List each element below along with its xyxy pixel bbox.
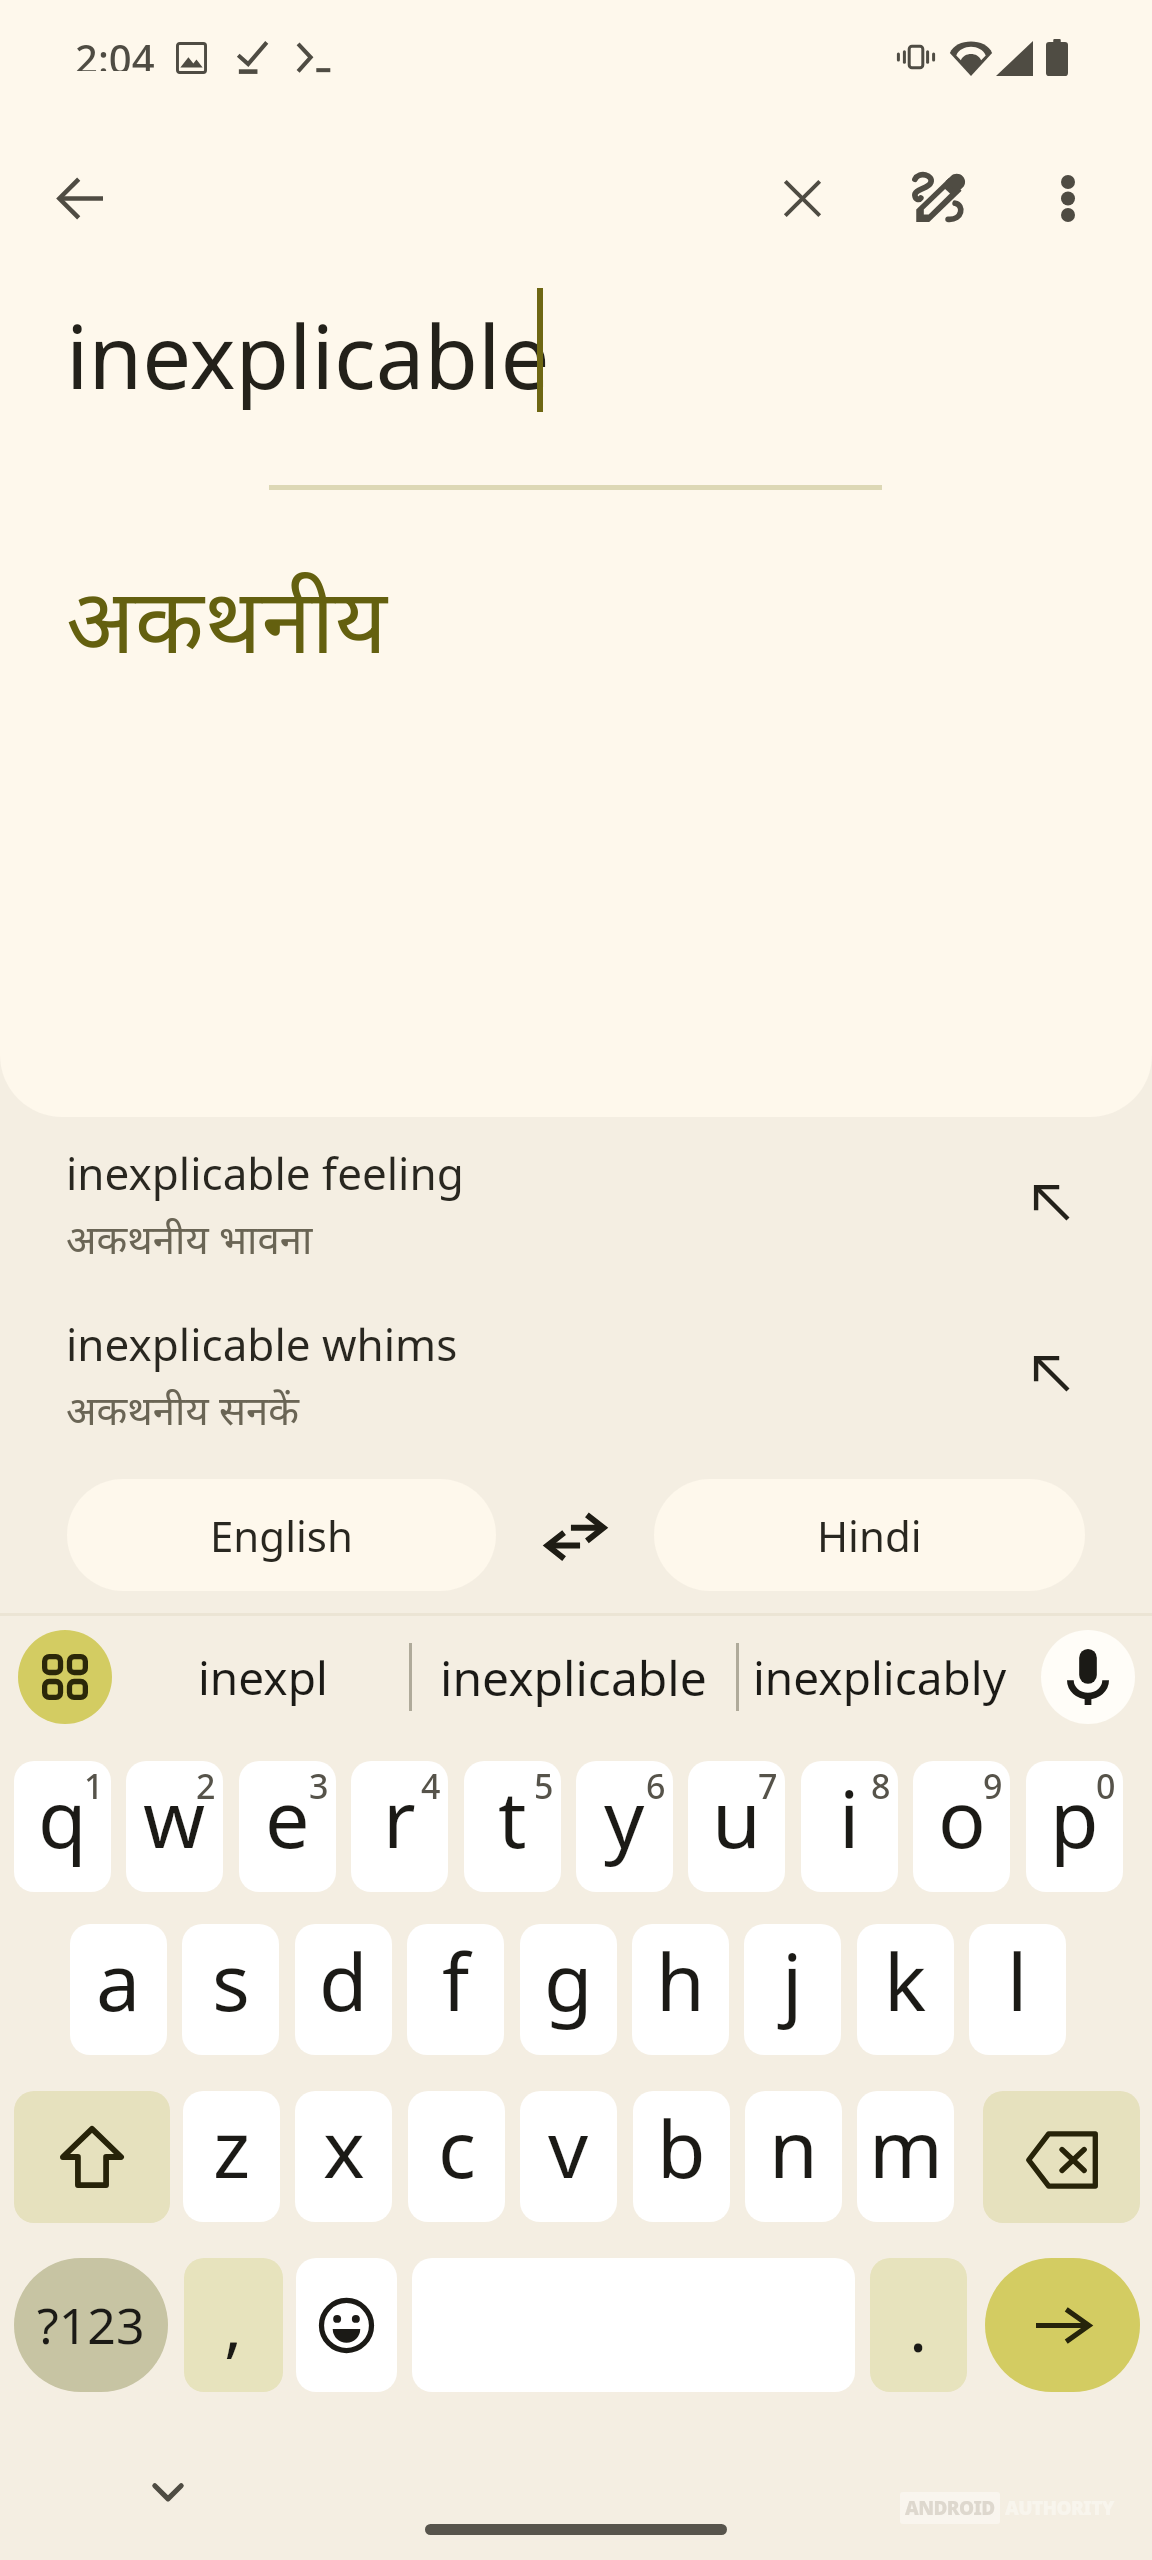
button[interactable]: Keyboard toolbar bbox=[18, 1630, 112, 1724]
staticText: , bbox=[224, 2277, 243, 2370]
staticText: a bbox=[96, 1927, 141, 2035]
button[interactable]: a bbox=[70, 1924, 167, 2055]
staticText: 0 bbox=[1096, 1763, 1116, 1809]
staticText: inexpl bbox=[198, 1646, 328, 1709]
staticText: e bbox=[265, 1764, 310, 1872]
button[interactable]: k bbox=[857, 1924, 954, 2055]
staticText: अकथनीय भावना bbox=[66, 1211, 313, 1265]
staticText: inexplicable bbox=[440, 1645, 707, 1710]
button[interactable]: English bbox=[67, 1479, 496, 1591]
button[interactable]: c bbox=[408, 2091, 505, 2222]
button[interactable]: Backspace bbox=[983, 2091, 1140, 2223]
staticText: 8 bbox=[871, 1763, 891, 1809]
staticText: . bbox=[909, 2279, 928, 2372]
button[interactable]: q bbox=[14, 1761, 111, 1892]
staticText: 1 bbox=[84, 1763, 104, 1809]
button[interactable]: Hindi bbox=[654, 1479, 1085, 1591]
staticText: inexplicably bbox=[753, 1646, 1007, 1709]
staticText: inexplicable bbox=[66, 296, 550, 414]
staticText: 6 bbox=[646, 1763, 666, 1809]
button[interactable]: p bbox=[1026, 1761, 1123, 1892]
staticText: AUTHORITY bbox=[1005, 2495, 1114, 2521]
staticText: 4 bbox=[421, 1763, 441, 1809]
button[interactable]: t bbox=[464, 1761, 561, 1892]
staticText: 5 bbox=[534, 1763, 554, 1809]
button[interactable]: Hide keyboard bbox=[128, 2452, 208, 2532]
button[interactable]: w bbox=[126, 1761, 223, 1892]
staticText: 9 bbox=[983, 1763, 1003, 1809]
staticText: r bbox=[383, 1764, 416, 1872]
staticText: u bbox=[712, 1764, 761, 1872]
staticText: o bbox=[938, 1764, 986, 1872]
staticText: w bbox=[143, 1764, 206, 1872]
staticText: अकथनीय bbox=[66, 557, 387, 680]
button[interactable]: g bbox=[520, 1924, 617, 2055]
button[interactable]: inexpl bbox=[122, 1630, 404, 1724]
staticText: d bbox=[319, 1927, 368, 2035]
button[interactable]: o bbox=[913, 1761, 1010, 1892]
button[interactable]: Voice input bbox=[1041, 1630, 1135, 1724]
button[interactable]: inexplicable feeling bbox=[0, 1135, 1152, 1285]
staticText: c bbox=[438, 2094, 476, 2202]
staticText: s bbox=[212, 1927, 250, 2035]
staticText: j bbox=[782, 1927, 803, 2035]
staticText: 3 bbox=[309, 1763, 329, 1809]
staticText: 7 bbox=[758, 1763, 778, 1809]
button[interactable]: inexplicably bbox=[733, 1630, 1027, 1724]
staticText: t bbox=[498, 1764, 527, 1872]
button[interactable]: inexplicable bbox=[415, 1630, 731, 1724]
button[interactable]: , bbox=[184, 2258, 283, 2392]
button[interactable]: Clear text bbox=[752, 148, 852, 248]
staticText: y bbox=[604, 1764, 645, 1872]
button[interactable]: z bbox=[183, 2091, 280, 2222]
staticText: x bbox=[323, 2094, 365, 2202]
staticText: q bbox=[38, 1764, 87, 1872]
button[interactable]: x bbox=[295, 2091, 392, 2222]
button[interactable]: j bbox=[744, 1924, 841, 2055]
button[interactable]: Back bbox=[30, 148, 130, 248]
staticText: z bbox=[213, 2094, 251, 2202]
button[interactable]: b bbox=[633, 2091, 730, 2222]
button[interactable]: Shift bbox=[14, 2091, 170, 2223]
staticText: h bbox=[656, 1927, 705, 2035]
staticText: 2 bbox=[196, 1763, 216, 1809]
staticText: f bbox=[442, 1927, 470, 2035]
staticText: m bbox=[869, 2094, 943, 2202]
staticText: ANDROID bbox=[905, 2495, 995, 2521]
button[interactable]: v bbox=[520, 2091, 617, 2222]
button[interactable]: ?123 bbox=[14, 2258, 168, 2392]
button[interactable]: Emoji bbox=[296, 2258, 397, 2392]
button[interactable]: m bbox=[857, 2091, 954, 2222]
button[interactable]: h bbox=[632, 1924, 729, 2055]
staticText: n bbox=[769, 2094, 818, 2202]
button[interactable]: y bbox=[576, 1761, 673, 1892]
staticText: k bbox=[884, 1927, 927, 2035]
button[interactable]: Swap languages bbox=[524, 1485, 626, 1587]
staticText: ?123 bbox=[37, 2291, 145, 2359]
button[interactable]: l bbox=[969, 1924, 1066, 2055]
button[interactable]: n bbox=[745, 2091, 842, 2222]
button[interactable]: u bbox=[688, 1761, 785, 1892]
staticText: 2:04 bbox=[75, 31, 155, 71]
button[interactable]: d bbox=[295, 1924, 392, 2055]
button[interactable]: More options bbox=[1018, 148, 1118, 248]
staticText: i bbox=[839, 1764, 860, 1872]
button[interactable]: r bbox=[351, 1761, 448, 1892]
button[interactable]: i bbox=[801, 1761, 898, 1892]
staticText: p bbox=[1050, 1764, 1099, 1872]
staticText: l bbox=[1007, 1927, 1028, 2035]
button[interactable]: Handwriting bbox=[890, 148, 990, 248]
staticText: inexplicable feeling bbox=[66, 1143, 464, 1203]
staticText: inexplicable whims bbox=[66, 1314, 458, 1374]
button[interactable]: f bbox=[407, 1924, 504, 2055]
button[interactable]: Enter bbox=[985, 2258, 1140, 2392]
staticText: v bbox=[548, 2094, 589, 2202]
button[interactable]: s bbox=[182, 1924, 279, 2055]
button[interactable]: e bbox=[239, 1761, 336, 1892]
staticText: Hindi bbox=[817, 1507, 922, 1564]
staticText: b bbox=[657, 2094, 706, 2202]
button[interactable]: inexplicable whims bbox=[0, 1306, 1152, 1456]
staticText: g bbox=[544, 1927, 593, 2035]
button[interactable]: . bbox=[870, 2258, 967, 2392]
